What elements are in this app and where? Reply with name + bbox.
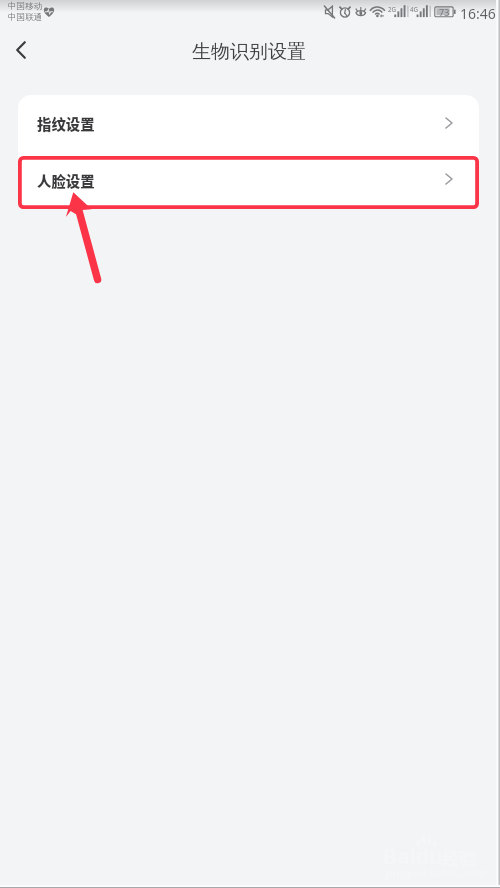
button[interactable]: Back <box>0 30 42 72</box>
staticText: 人脸设置 <box>37 170 95 191</box>
staticText: 中国联通 <box>8 12 43 23</box>
staticText: 中国移动 <box>8 1 43 12</box>
button[interactable]: 指纹设置 <box>18 95 479 152</box>
staticText: 生物识别设置 <box>192 40 306 64</box>
staticText: 16:46 <box>460 4 496 23</box>
staticText: 4G <box>410 5 419 13</box>
staticText: 73 <box>439 6 450 18</box>
button[interactable]: 人脸设置 <box>18 152 479 208</box>
staticText: 2G <box>388 5 397 13</box>
staticText: 指纹设置 <box>37 113 95 134</box>
